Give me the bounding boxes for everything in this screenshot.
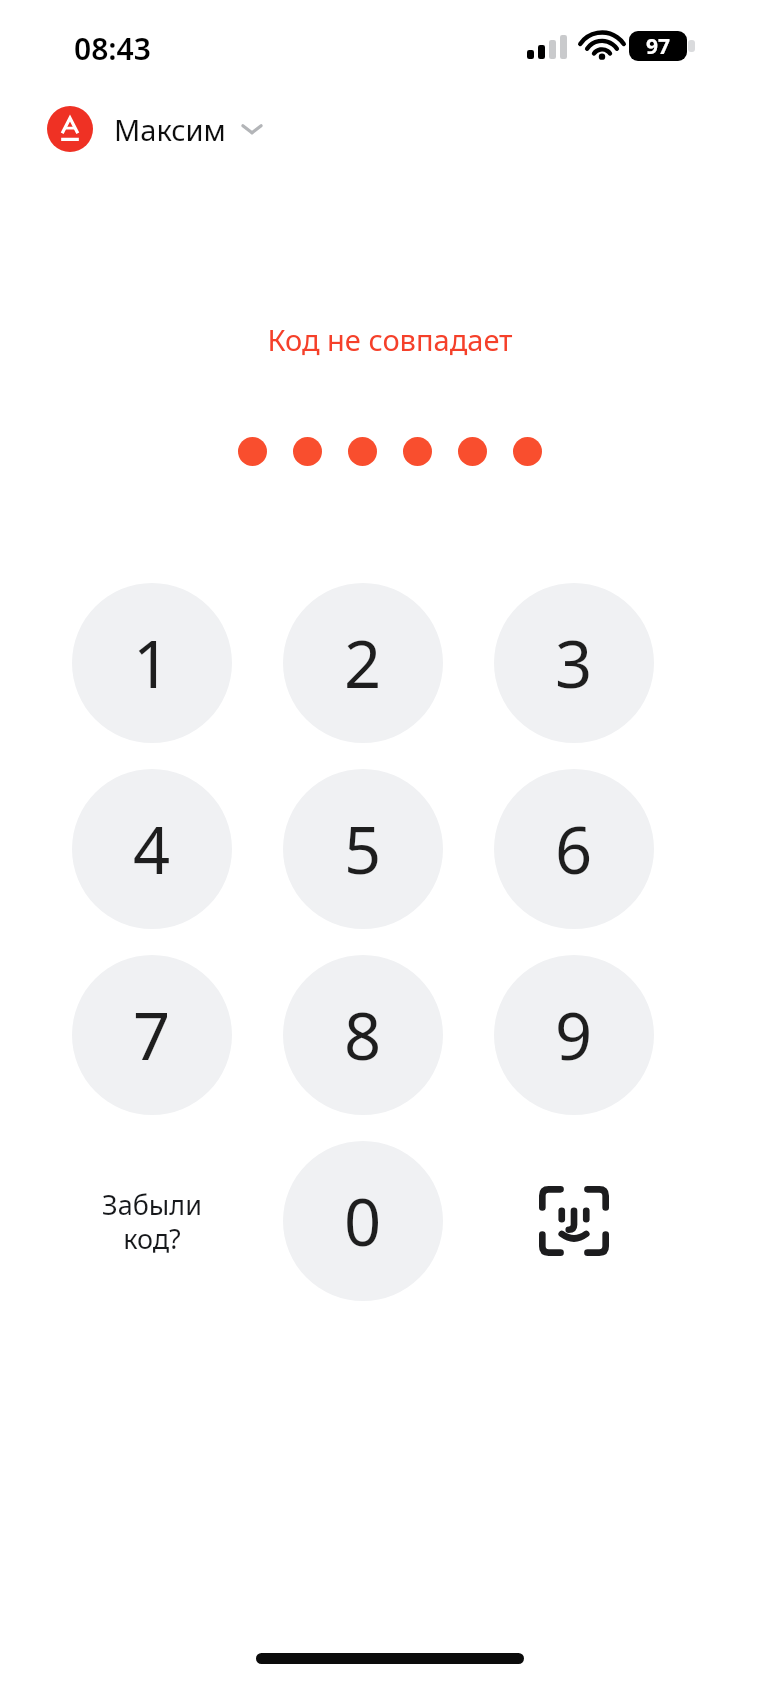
- staticText: 1: [133, 619, 171, 708]
- button[interactable]: Забыли код?: [72, 1141, 232, 1301]
- staticText: 4: [133, 805, 171, 894]
- staticText: 3: [555, 619, 593, 708]
- staticText: 5: [344, 805, 382, 894]
- staticText: 9: [555, 991, 593, 1080]
- staticText: 0: [344, 1177, 382, 1266]
- button[interactable]: 3: [494, 583, 654, 743]
- staticText: 6: [555, 805, 593, 894]
- staticText: 8: [344, 991, 382, 1080]
- staticText: 2: [344, 619, 382, 708]
- staticText: Забыли код?: [102, 1186, 202, 1257]
- button[interactable]: 5: [283, 769, 443, 929]
- staticText: 97: [646, 32, 671, 61]
- button[interactable]: 7: [72, 955, 232, 1115]
- staticText: 08:43: [74, 28, 151, 69]
- button[interactable]: 1: [72, 583, 232, 743]
- staticText: Максим: [114, 110, 226, 149]
- staticText: Код не совпадает: [267, 320, 513, 359]
- button[interactable]: Максим: [47, 106, 264, 152]
- button[interactable]: 2: [283, 583, 443, 743]
- button[interactable]: 0: [283, 1141, 443, 1301]
- button[interactable]: 6: [494, 769, 654, 929]
- staticText: 7: [133, 991, 171, 1080]
- button[interactable]: Face ID: [494, 1141, 654, 1301]
- button[interactable]: 9: [494, 955, 654, 1115]
- button[interactable]: 4: [72, 769, 232, 929]
- button[interactable]: 8: [283, 955, 443, 1115]
